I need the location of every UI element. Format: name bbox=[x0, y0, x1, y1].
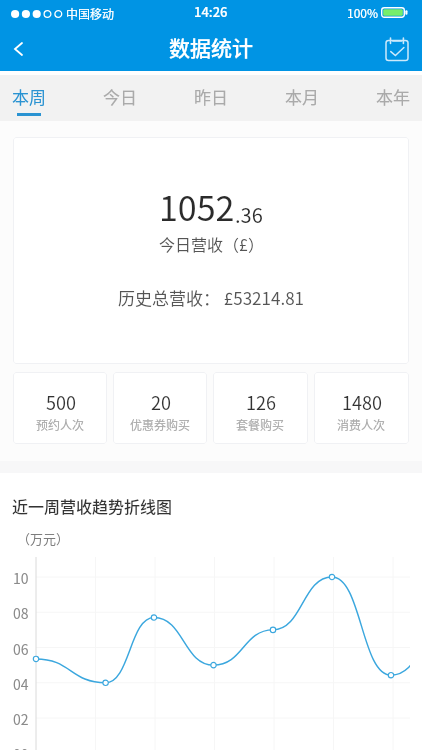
staticText: 08 bbox=[13, 603, 29, 623]
button[interactable]: 本年 bbox=[347, 75, 422, 121]
staticText: 今日 bbox=[103, 84, 137, 109]
button[interactable]: 1480 bbox=[314, 372, 409, 444]
staticText: 126 bbox=[246, 389, 276, 415]
button[interactable]: 500 bbox=[13, 372, 107, 444]
staticText: 本周 bbox=[12, 84, 46, 109]
staticText: 1052 bbox=[159, 182, 235, 231]
staticText: 昨日 bbox=[194, 84, 228, 109]
button[interactable]: 本周 bbox=[0, 75, 74, 121]
staticText: （万元） bbox=[17, 529, 70, 548]
staticText: 预约人次 bbox=[36, 416, 85, 433]
staticText: 消费人次 bbox=[337, 416, 386, 433]
button[interactable]: 20 bbox=[113, 372, 207, 444]
staticText: 1480 bbox=[342, 389, 382, 415]
button[interactable]: Calendar bbox=[374, 27, 422, 71]
staticText: 20 bbox=[151, 389, 171, 415]
staticText: 100% bbox=[347, 4, 379, 21]
staticText: 优惠券购买 bbox=[130, 416, 191, 433]
staticText: 06 bbox=[13, 639, 29, 659]
staticText: 500 bbox=[46, 389, 76, 415]
staticText: 近一周营收趋势折线图 bbox=[12, 494, 173, 517]
button[interactable]: 126 bbox=[213, 372, 308, 444]
staticText: 04 bbox=[13, 674, 29, 694]
staticText: 14:26 bbox=[194, 2, 228, 21]
staticText: 本年 bbox=[376, 84, 410, 109]
staticText: .36 bbox=[235, 200, 263, 229]
button[interactable]: Back bbox=[0, 27, 44, 71]
staticText: 中国移动 bbox=[66, 5, 115, 22]
staticText: 00 bbox=[13, 744, 29, 750]
staticText: 02 bbox=[13, 709, 29, 729]
staticText: 套餐购买 bbox=[236, 416, 285, 433]
button[interactable]: 今日 bbox=[74, 75, 165, 121]
staticText: 今日营收（£） bbox=[159, 232, 264, 255]
staticText: 10 bbox=[13, 568, 29, 588]
button[interactable]: 1052 bbox=[13, 137, 409, 364]
button[interactable]: 本月 bbox=[256, 75, 347, 121]
staticText: 本月 bbox=[285, 84, 319, 109]
button[interactable]: 昨日 bbox=[165, 75, 256, 121]
staticText: 历史总营收： £53214.81 bbox=[118, 285, 305, 310]
staticText: 数据统计 bbox=[169, 32, 253, 62]
